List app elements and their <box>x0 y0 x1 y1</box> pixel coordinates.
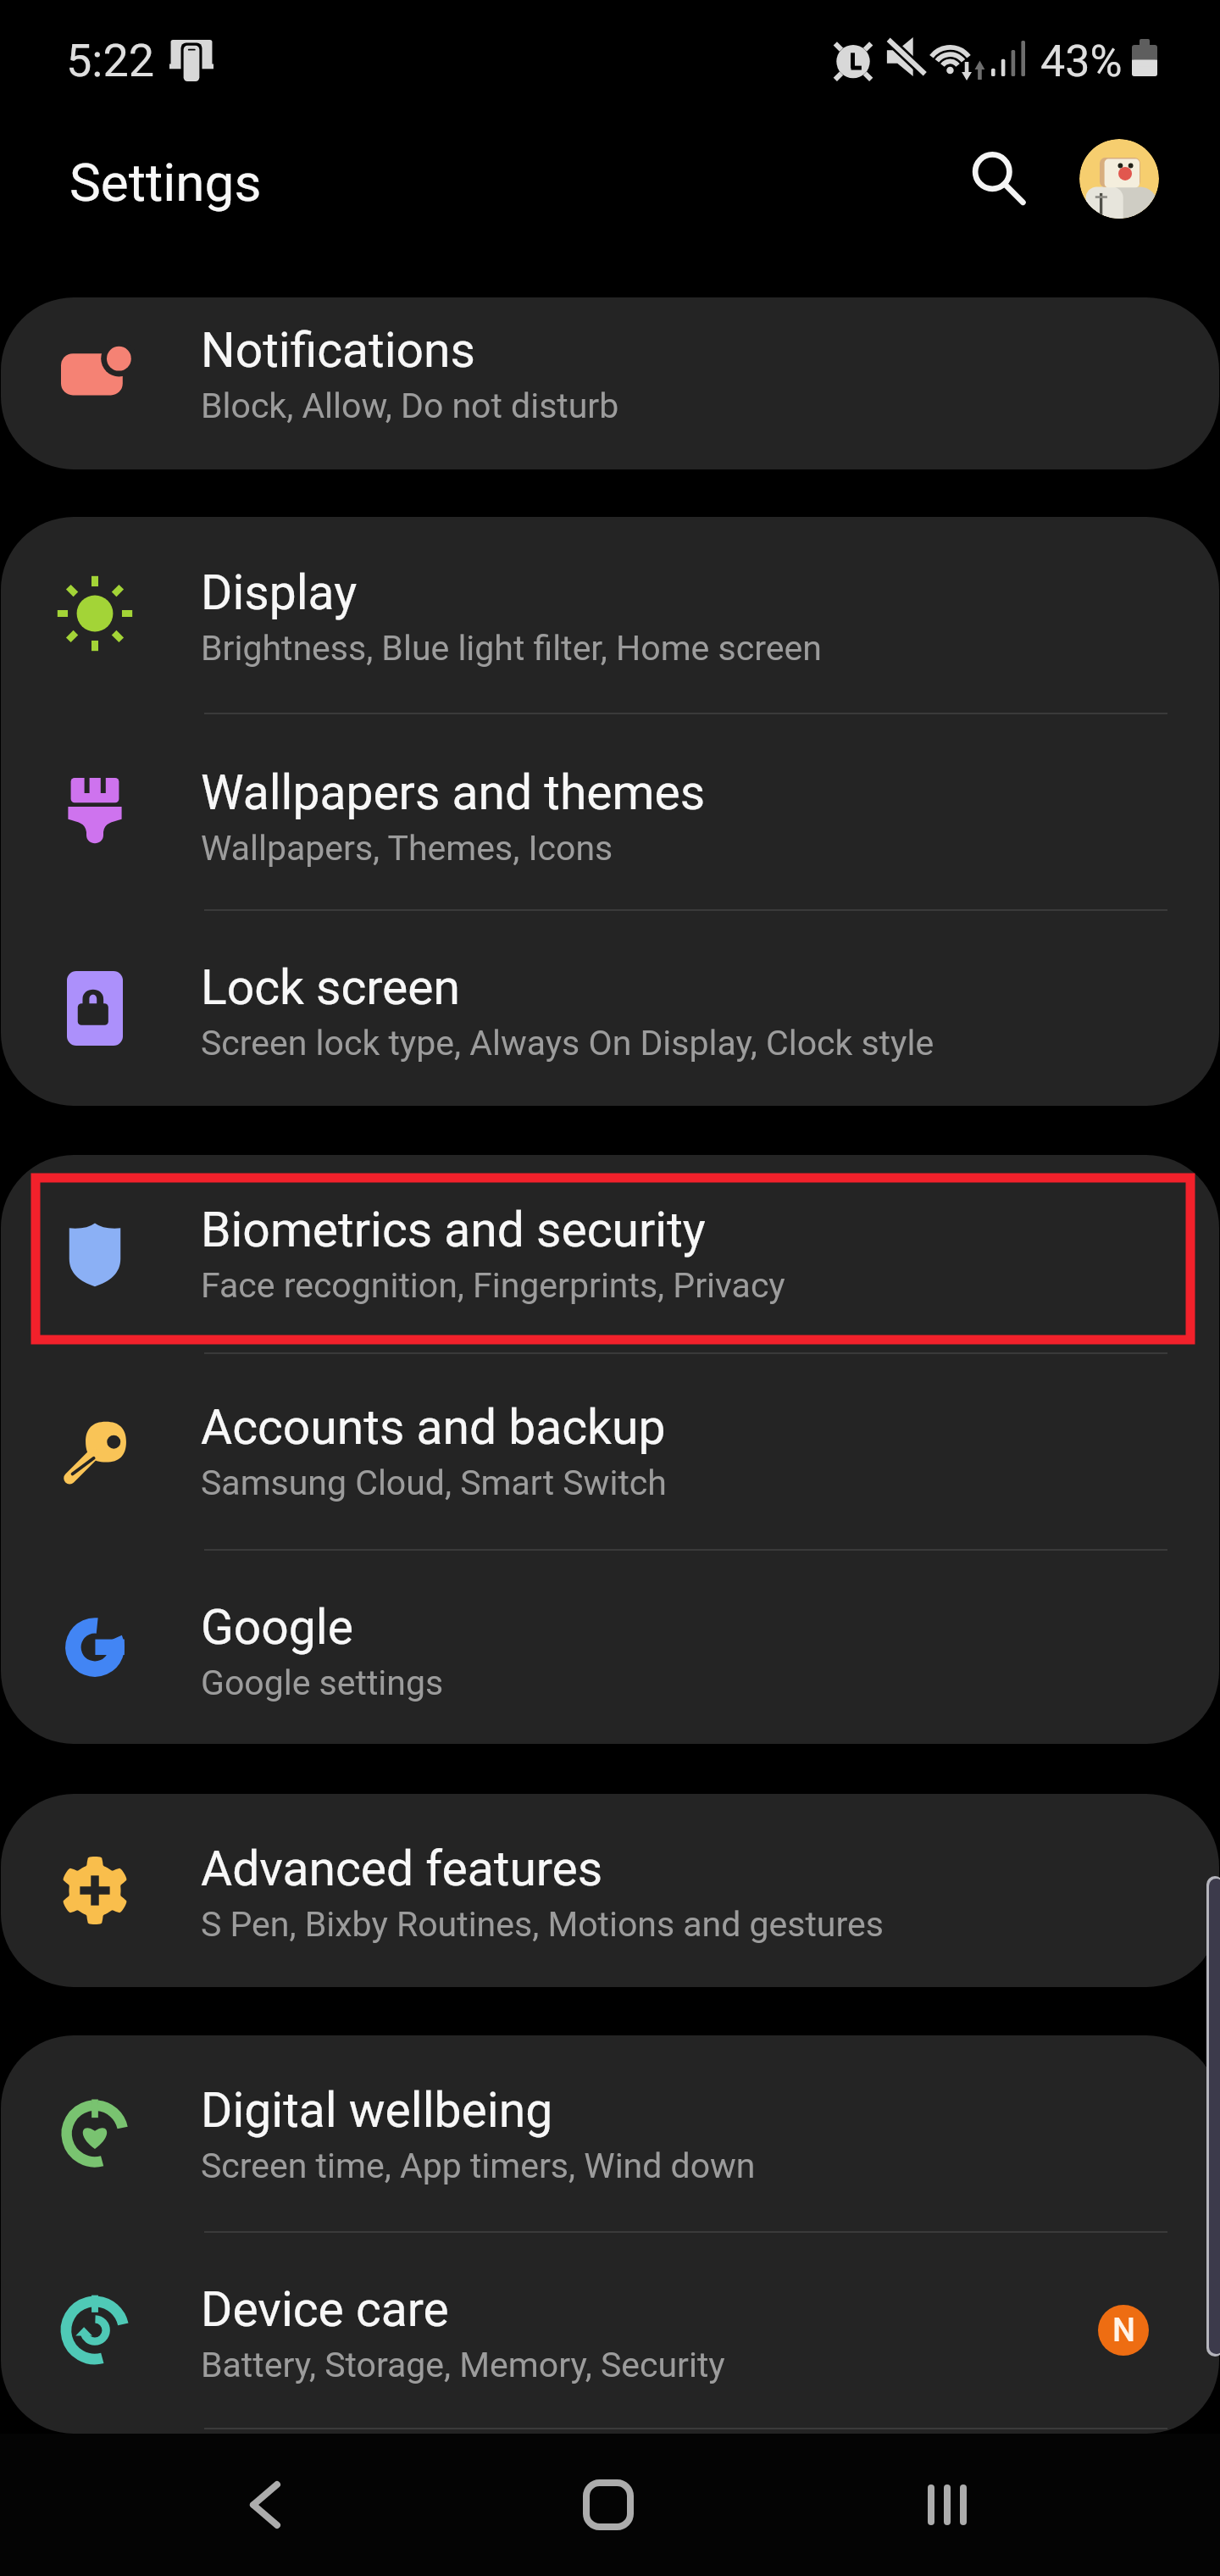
staticText: Wallpapers and themes <box>201 764 706 821</box>
button[interactable]: Notifications <box>0 297 1220 469</box>
staticText: Digital wellbeing <box>201 2082 553 2139</box>
staticText: Face recognition, Fingerprints, Privacy <box>201 1265 785 1306</box>
button[interactable]: Samsung account <box>1079 139 1159 219</box>
button[interactable]: Wallpapers and themes <box>0 714 1220 909</box>
staticText: Accounts and backup <box>201 1399 666 1456</box>
staticText: Biometrics and security <box>201 1202 706 1258</box>
staticText: Device care <box>201 2281 449 2338</box>
button[interactable]: Lock screen <box>0 911 1220 1106</box>
staticText: Brightness, Blue light filter, Home scre… <box>201 628 822 669</box>
button[interactable]: Advanced features <box>0 1794 1220 1987</box>
button[interactable]: Display <box>0 517 1220 713</box>
staticText: Screen lock type, Always On Display, Clo… <box>201 1023 934 1063</box>
staticText: N <box>1112 2312 1135 2350</box>
staticText: Advanced features <box>201 1840 603 1897</box>
button[interactable]: Digital wellbeing <box>0 2035 1220 2231</box>
staticText: Battery, Storage, Memory, Security <box>201 2345 725 2385</box>
button[interactable]: Back <box>164 2434 367 2576</box>
staticText: Settings <box>69 152 262 214</box>
button[interactable]: Search <box>952 132 1044 224</box>
button[interactable]: Home <box>507 2434 710 2576</box>
staticText: Google settings <box>201 1663 444 1703</box>
staticText: 43% <box>1040 36 1123 87</box>
staticText: Display <box>201 564 358 621</box>
button[interactable]: Biometrics and security <box>0 1155 1220 1352</box>
staticText: 5:22 <box>66 34 155 87</box>
staticText: Samsung Cloud, Smart Switch <box>201 1463 667 1503</box>
button[interactable]: Google <box>0 1551 1220 1744</box>
staticText: Block, Allow, Do not disturb <box>201 386 619 426</box>
staticText: Google <box>201 1599 353 1656</box>
staticText: Screen time, App timers, Wind down <box>201 2146 756 2186</box>
button[interactable]: Recent apps <box>846 2434 1049 2576</box>
staticText: Notifications <box>201 322 476 379</box>
staticText: Lock screen <box>201 959 461 1016</box>
button[interactable]: Device care <box>0 2233 1220 2428</box>
button[interactable]: Accounts and backup <box>0 1354 1220 1549</box>
staticText: S Pen, Bixby Routines, Motions and gestu… <box>201 1904 884 1945</box>
staticText: Wallpapers, Themes, Icons <box>201 828 613 869</box>
